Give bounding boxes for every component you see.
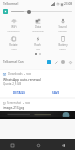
button[interactable]: Back xyxy=(8,141,16,149)
staticText: now xyxy=(25,101,31,105)
staticText: 23:08 xyxy=(64,2,73,6)
button[interactable]: Screenshot xyxy=(0,99,75,119)
staticText: WhatsApp auto-renewal xyxy=(3,77,41,81)
staticText: now xyxy=(26,72,32,76)
staticText: Downloads xyxy=(8,72,23,76)
staticText: SAVE xyxy=(52,91,60,95)
staticText: Data xyxy=(35,25,41,29)
staticText: Telkomsel xyxy=(3,2,19,6)
staticText: Rotate xyxy=(9,43,18,47)
button[interactable]: WiFi xyxy=(2,18,25,32)
staticText: Saver xyxy=(59,47,66,50)
staticText: Telkomsel Can xyxy=(3,60,24,64)
button[interactable]: Brightness slider xyxy=(11,8,72,15)
staticText: Auto xyxy=(11,47,17,50)
staticText: Vibrate xyxy=(58,29,67,32)
staticText: Screenshot xyxy=(7,101,22,105)
button[interactable]: Rotate xyxy=(2,36,25,50)
button[interactable]: Power xyxy=(68,60,72,64)
staticText: AndroidAP xyxy=(7,29,20,32)
staticText: Telkomsel xyxy=(32,29,44,32)
button[interactable]: Battery xyxy=(51,36,74,50)
button[interactable]: Edit xyxy=(54,60,58,64)
staticText: image-213.jpg xyxy=(3,106,25,110)
staticText: Flash xyxy=(34,43,41,47)
button[interactable]: Settings xyxy=(61,60,65,64)
button[interactable]: Downloads xyxy=(0,70,75,97)
button[interactable]: Data xyxy=(26,18,49,32)
staticText: Sound xyxy=(58,25,67,29)
button[interactable]: Telkomsel Can xyxy=(3,60,24,64)
button[interactable]: Auto brightness xyxy=(3,9,8,14)
button[interactable]: DETAILS xyxy=(0,88,37,97)
button[interactable]: Home xyxy=(34,141,42,149)
staticText: Quota 2,5 GB xyxy=(3,82,22,86)
button[interactable]: SAVE xyxy=(37,88,75,97)
button[interactable]: Flash xyxy=(26,36,49,50)
staticText: DETAILS xyxy=(13,91,25,95)
staticText: Off xyxy=(36,47,40,50)
button[interactable]: User xyxy=(47,60,51,64)
staticText: Battery xyxy=(58,43,68,47)
button[interactable]: Sound xyxy=(51,18,74,32)
staticText: WiFi xyxy=(11,25,17,29)
button[interactable]: Recents xyxy=(59,141,67,149)
